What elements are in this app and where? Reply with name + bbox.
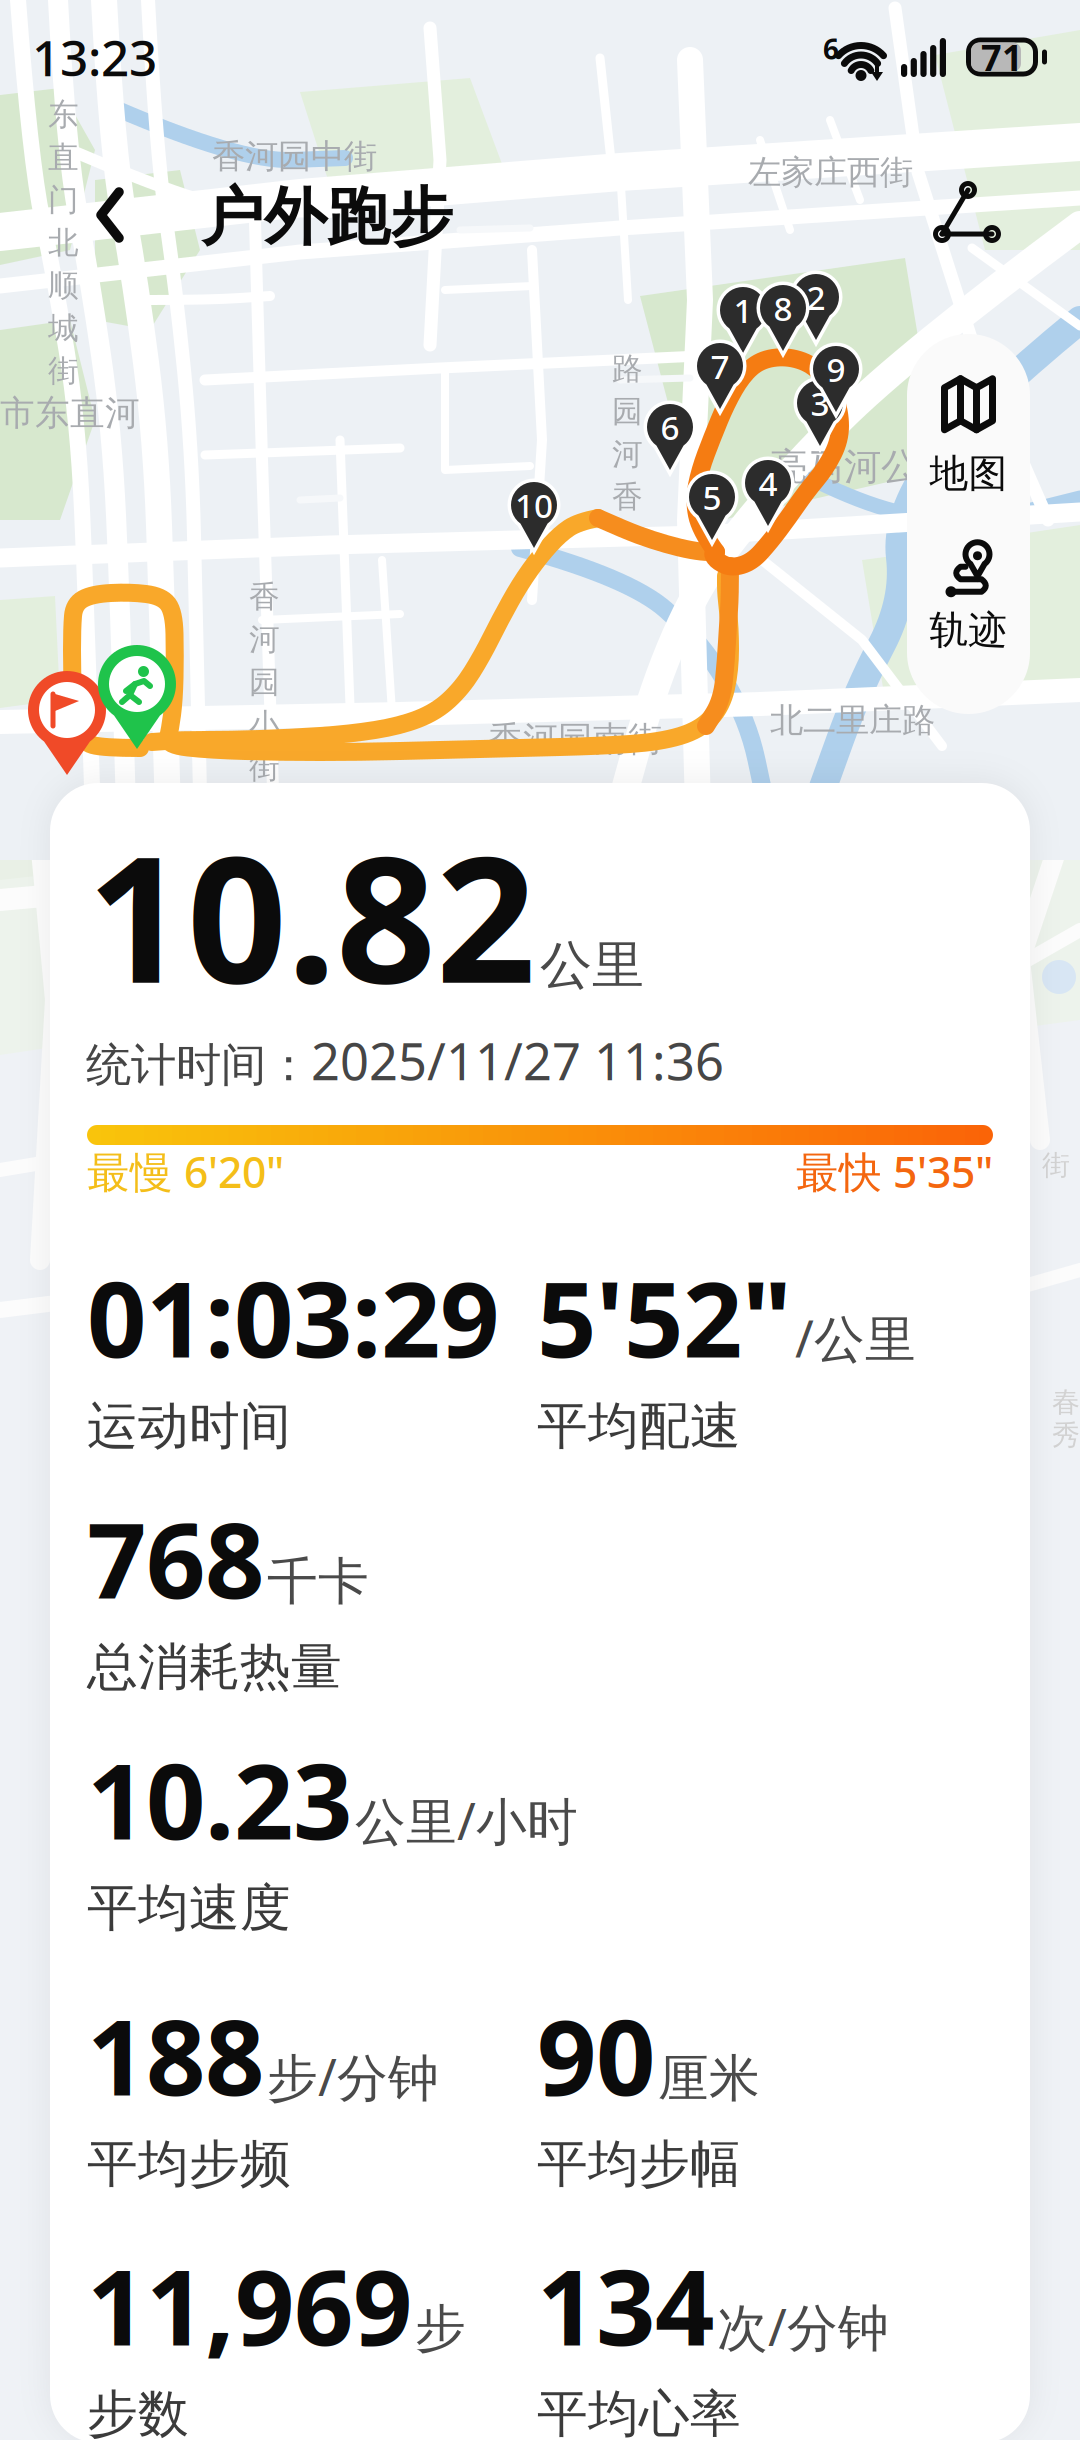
- staticText: 步/分钟: [267, 2043, 439, 2110]
- staticText: 8: [773, 286, 792, 330]
- staticText: 亮马河公: [770, 444, 918, 490]
- staticText: 5'52": [537, 1248, 792, 1386]
- staticText: 北: [48, 224, 79, 262]
- staticText: 10.23: [87, 1730, 352, 1868]
- staticText: 地图: [929, 450, 1007, 497]
- staticText: 城: [48, 309, 79, 347]
- staticText: 1: [733, 288, 752, 332]
- button[interactable]: 返回: [62, 167, 158, 263]
- staticText: 188: [87, 1986, 264, 2124]
- staticText: 运动时间: [87, 1395, 291, 1457]
- staticText: 71: [981, 33, 1023, 81]
- staticText: 总消耗热量: [87, 1636, 342, 1698]
- button[interactable]: 轨迹: [907, 524, 1030, 714]
- staticText: 街: [48, 352, 79, 390]
- staticText: 香河园南街: [488, 718, 663, 761]
- staticText: 768: [87, 1489, 264, 1627]
- staticText: 步数: [87, 2383, 189, 2440]
- staticText: 厘米: [658, 2047, 760, 2110]
- staticText: 平均心率: [537, 2383, 741, 2440]
- staticText: 7: [710, 344, 729, 388]
- staticText: 街: [1042, 1148, 1070, 1182]
- staticText: 9: [826, 347, 845, 391]
- staticText: 6: [660, 405, 679, 449]
- staticText: 千卡: [267, 1550, 369, 1613]
- staticText: 3: [810, 381, 829, 425]
- staticText: 东: [48, 96, 79, 134]
- staticText: 次/分钟: [717, 2293, 889, 2360]
- staticText: 公里/小时: [355, 1787, 578, 1854]
- staticText: 市东直河: [0, 392, 140, 435]
- staticText: 轨迹: [929, 606, 1007, 654]
- staticText: 平均步频: [87, 2133, 291, 2195]
- staticText: 90: [537, 1986, 655, 2124]
- staticText: 香: [612, 478, 643, 516]
- staticText: 5: [702, 475, 721, 519]
- staticText: 11,969: [87, 2236, 412, 2374]
- staticText: 春: [1052, 1385, 1080, 1419]
- staticText: 10.82: [87, 799, 536, 1031]
- staticText: 左家庄西街: [748, 152, 913, 193]
- staticText: 香河园中街: [212, 136, 377, 177]
- staticText: 10: [515, 483, 553, 527]
- staticText: 最快 5'35": [796, 1143, 993, 1200]
- staticText: 4: [758, 461, 777, 505]
- staticText: 直: [48, 139, 79, 176]
- button[interactable]: 分享: [908, 153, 1018, 263]
- staticText: 01:03:29: [87, 1248, 499, 1386]
- staticText: 河: [249, 621, 280, 658]
- staticText: 路: [612, 350, 643, 388]
- staticText: 134: [537, 2236, 714, 2374]
- staticText: 统计时间：: [86, 1037, 311, 1093]
- staticText: 园: [612, 393, 643, 430]
- staticText: 北二里庄路: [770, 700, 935, 741]
- button[interactable]: 地图: [907, 334, 1030, 524]
- staticText: 街: [249, 749, 280, 786]
- staticText: 秀: [1052, 1418, 1080, 1452]
- staticText: /公里: [795, 1304, 916, 1371]
- staticText: 13:23: [32, 24, 157, 90]
- staticText: 6: [823, 30, 839, 67]
- staticText: 2: [806, 275, 825, 319]
- staticText: 平均配速: [537, 1395, 741, 1457]
- staticText: 最慢 6'20": [87, 1143, 284, 1200]
- staticText: 2025/11/27 11:36: [311, 1027, 724, 1094]
- staticText: 户外跑步: [201, 179, 453, 256]
- staticText: 门: [48, 181, 79, 219]
- staticText: 公里: [540, 933, 644, 997]
- staticText: 步: [415, 2297, 466, 2360]
- staticText: 园: [249, 663, 280, 701]
- staticText: 香: [249, 578, 280, 616]
- staticText: 河: [612, 435, 643, 473]
- staticText: 平均步幅: [537, 2133, 741, 2195]
- staticText: 小: [249, 706, 280, 744]
- staticText: 平均速度: [87, 1877, 291, 1939]
- staticText: 顺: [48, 267, 79, 304]
